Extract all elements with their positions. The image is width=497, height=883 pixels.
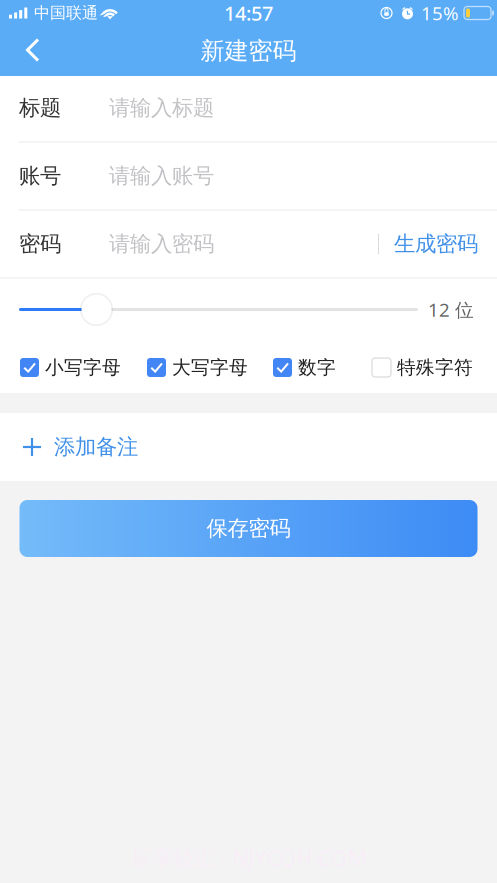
- staticText: 请输入密码: [109, 231, 214, 257]
- button[interactable]: 特殊字符: [372, 356, 473, 379]
- button[interactable]: 生成密码: [379, 219, 478, 269]
- staticText: 保存密码: [206, 515, 290, 542]
- staticText: 特殊字符: [397, 356, 473, 379]
- button[interactable]: 返回: [11, 29, 55, 73]
- staticText: 15%: [421, 1, 459, 25]
- staticText: 14:57: [224, 0, 273, 26]
- staticText: 12 位: [428, 297, 474, 322]
- staticText: 数字: [298, 356, 336, 379]
- staticText: 中国联通: [34, 3, 98, 23]
- staticText: 添加备注: [54, 434, 138, 460]
- staticText: 小写字母: [45, 356, 121, 379]
- button[interactable]: 保存密码: [19, 500, 477, 557]
- staticText: 请输入账号: [109, 163, 214, 189]
- staticText: 账号: [19, 163, 61, 189]
- staticText: 请输入标题: [109, 95, 214, 121]
- staticText: 生成密码: [394, 231, 478, 257]
- staticText: 标题: [19, 95, 61, 121]
- button[interactable]: 添加备注: [0, 413, 497, 481]
- staticText: 大写字母: [172, 356, 248, 379]
- button[interactable]: 大写字母: [147, 356, 248, 379]
- button[interactable]: 小写字母: [20, 356, 121, 379]
- staticText: 新建密码: [200, 36, 296, 66]
- staticText: 密码: [19, 231, 61, 257]
- button[interactable]: 数字: [273, 356, 336, 379]
